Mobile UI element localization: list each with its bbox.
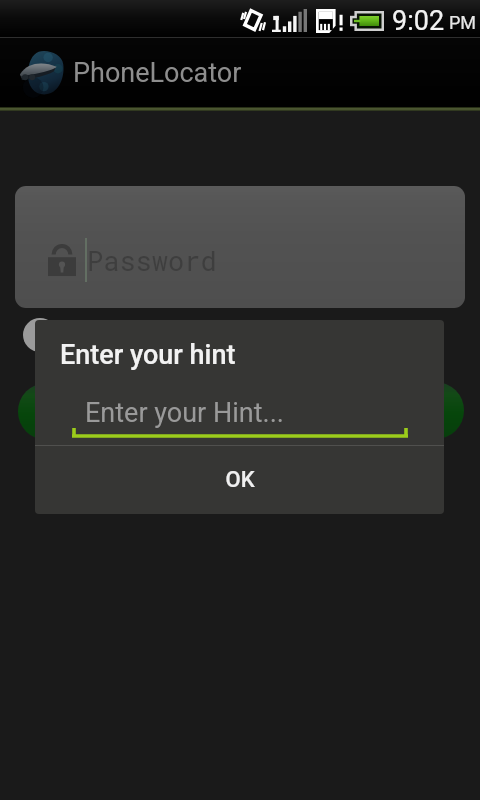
button[interactable]: Locate — [18, 383, 75, 440]
staticText: Enter your Hint... — [85, 397, 284, 429]
staticText: OK — [225, 467, 255, 493]
button[interactable]: Password — [15, 186, 465, 308]
staticText: PM — [449, 12, 477, 33]
staticText: Enter your hint — [60, 339, 236, 371]
button[interactable]: OK — [35, 446, 444, 514]
button[interactable]: Locate — [407, 382, 464, 439]
staticText: Password — [87, 243, 217, 279]
staticText: 9:02 — [392, 5, 445, 37]
staticText: PhoneLocator — [73, 57, 242, 89]
